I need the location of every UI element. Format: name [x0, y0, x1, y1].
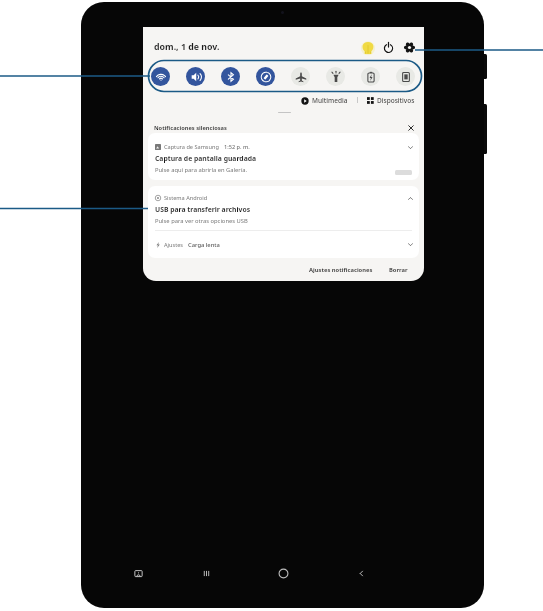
button[interactable]: Sistema Android — [148, 186, 419, 230]
button[interactable]: Apagar — [380, 39, 397, 56]
staticText: Captura de Samsung — [164, 143, 219, 151]
staticText: Ajustes — [164, 241, 184, 249]
button[interactable]: Inicio — [277, 567, 290, 580]
button[interactable]: Ajustes notificaciones — [307, 264, 375, 276]
button[interactable]: Atrás — [355, 567, 368, 580]
button[interactable]: Modo avion — [283, 60, 318, 93]
button[interactable]: Ahorro bateria — [353, 60, 388, 93]
staticText: Pulse aquí para abrirla en Galería. — [155, 166, 248, 174]
button[interactable]: Dispositivos — [366, 96, 416, 105]
button[interactable]: Captura de pantalla — [132, 567, 145, 580]
button[interactable]: Ajustes — [401, 39, 418, 56]
staticText: Ajustes notificaciones — [309, 266, 373, 274]
button[interactable]: Linterna — [318, 60, 353, 93]
staticText: Carga lenta — [188, 241, 220, 249]
staticText: Sistema Android — [164, 194, 208, 202]
button[interactable]: Multimedia — [300, 96, 349, 105]
staticText: Dispositivos — [377, 96, 415, 105]
button[interactable]: Sonido — [178, 60, 213, 93]
button[interactable]: Borrar — [387, 264, 410, 276]
button[interactable]: Bluetooth — [213, 60, 248, 93]
staticText: USB para transferir archivos — [155, 205, 251, 214]
button[interactable]: Ajustes — [155, 231, 414, 258]
staticText: Borrar — [389, 266, 408, 274]
staticText: dom., 1 de nov. — [154, 41, 220, 53]
staticText: Pulse para ver otras opciones USB — [155, 217, 248, 225]
button[interactable]: Captura de Samsung — [148, 133, 419, 180]
button[interactable]: Recientes — [200, 567, 213, 580]
staticText: Captura de pantalla guardada — [155, 154, 257, 163]
button[interactable]: Brillo — [359, 39, 376, 56]
staticText: 1:52 p. m. — [224, 143, 250, 151]
button[interactable]: Cerrar — [405, 122, 416, 133]
button[interactable]: Girar — [248, 60, 283, 93]
button[interactable]: SIM — [388, 60, 423, 93]
staticText: Notificaciones silenciosas — [154, 124, 227, 132]
staticText: Multimedia — [312, 96, 348, 105]
button[interactable]: Wi-Fi — [143, 60, 178, 93]
